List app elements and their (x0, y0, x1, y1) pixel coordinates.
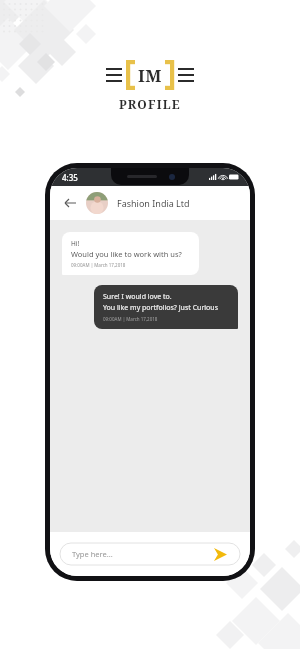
staticText: PROFILE (119, 96, 181, 112)
staticText: 09:00AM | March 17,2018 (103, 316, 158, 322)
button[interactable]: Hi! (62, 232, 199, 275)
staticText: Sure! I would love to. (103, 292, 172, 302)
button[interactable] (86, 192, 108, 214)
button[interactable]: Type here... (60, 543, 240, 565)
button[interactable]: Back (60, 193, 80, 213)
staticText: Hi! (71, 239, 80, 248)
staticText: Fashion India Ltd (117, 197, 190, 209)
button[interactable]: Sure! I would love to. (94, 285, 238, 329)
staticText: Type here... (72, 549, 113, 559)
staticText: 4:35 (62, 172, 78, 183)
staticText: You like my portfolios? Just Curious (103, 303, 219, 313)
staticText: Would you like to work with us? (71, 249, 182, 259)
staticText: 09:00AM | March 17,2018 (71, 262, 126, 268)
button[interactable]: Send (212, 546, 228, 562)
staticText: IM (138, 64, 163, 87)
